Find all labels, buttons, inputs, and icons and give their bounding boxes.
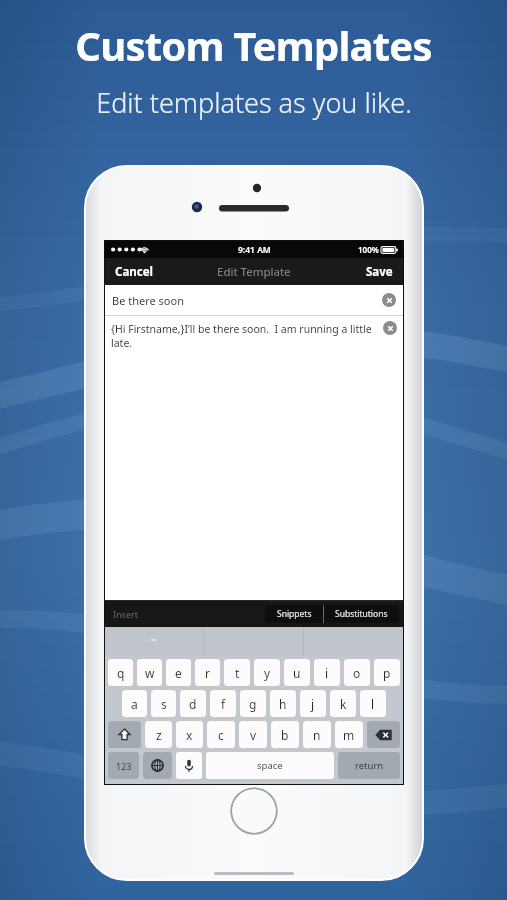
staticText: Custom Templates	[75, 18, 432, 72]
button[interactable]: p	[374, 659, 400, 686]
button[interactable]: space	[206, 752, 334, 779]
button[interactable]: Snippets	[265, 605, 323, 623]
button[interactable]: t	[224, 659, 250, 686]
staticText: {Hi Firstname,}I’ll be there soon. I am …	[111, 322, 381, 350]
button[interactable]: Shift	[108, 721, 141, 748]
button[interactable]: Save	[366, 258, 393, 285]
button[interactable]: Clear text	[382, 293, 396, 307]
staticText: Edit Template	[217, 264, 291, 280]
staticText: ""	[151, 637, 157, 647]
staticText: Be there soon	[112, 293, 184, 308]
staticText: g	[249, 696, 257, 712]
button[interactable]: Substitutions	[324, 605, 399, 623]
staticText: Save	[366, 264, 393, 280]
button[interactable]: w	[137, 659, 162, 686]
staticText: u	[293, 665, 301, 681]
button[interactable]: j	[300, 690, 326, 717]
staticText: i	[325, 665, 329, 681]
button[interactable]: g	[240, 690, 266, 717]
staticText: return	[355, 759, 384, 772]
button[interactable]: Cancel	[115, 258, 153, 285]
staticText: 100%	[358, 244, 379, 255]
button[interactable]: o	[344, 659, 370, 686]
button[interactable]: a	[122, 690, 147, 717]
staticText: k	[340, 696, 347, 712]
button[interactable]: h	[270, 690, 296, 717]
button[interactable]: Backspace	[367, 721, 400, 748]
button[interactable]: 123	[108, 752, 139, 779]
staticText: z	[156, 727, 162, 743]
button[interactable]: return	[338, 752, 400, 779]
staticText: 9:41 AM	[238, 244, 271, 256]
staticText: Edit templates as you like.	[96, 84, 412, 121]
button[interactable]: i	[314, 659, 340, 686]
staticText: h	[279, 696, 287, 712]
staticText: s	[161, 696, 167, 712]
button[interactable]: l	[360, 690, 386, 717]
button[interactable]: y	[254, 659, 280, 686]
button[interactable]: Switch keyboard	[143, 752, 172, 779]
staticText: w	[145, 665, 155, 681]
button[interactable]: z	[145, 721, 172, 748]
staticText: Cancel	[115, 264, 153, 280]
button[interactable]: f	[210, 690, 236, 717]
staticText: f	[221, 696, 226, 712]
staticText: v	[250, 727, 257, 743]
staticText: y	[264, 665, 271, 681]
staticText: space	[257, 759, 283, 772]
button[interactable]: b	[271, 721, 299, 748]
staticText: Substitutions	[335, 608, 388, 620]
button[interactable]: Be there soon	[105, 285, 403, 315]
staticText: l	[371, 696, 375, 712]
staticText: d	[189, 696, 197, 712]
staticText: m	[343, 727, 355, 743]
button[interactable]: s	[151, 690, 176, 717]
button[interactable]: c	[207, 721, 235, 748]
button[interactable]: d	[180, 690, 206, 717]
button[interactable]: e	[166, 659, 191, 686]
staticText: c	[218, 727, 224, 743]
button[interactable]: u	[284, 659, 310, 686]
button[interactable]: Clear text	[383, 321, 397, 335]
staticText: r	[205, 665, 210, 681]
button[interactable]: r	[195, 659, 220, 686]
button[interactable]: n	[303, 721, 331, 748]
staticText: a	[131, 696, 138, 712]
button[interactable]: v	[239, 721, 267, 748]
button[interactable]: {Hi Firstname,}I’ll be there soon. I am …	[105, 316, 403, 600]
staticText: e	[175, 665, 182, 681]
staticText: 123	[116, 760, 132, 772]
staticText: p	[383, 665, 391, 681]
button[interactable]: x	[176, 721, 203, 748]
staticText: o	[353, 665, 361, 681]
button[interactable]: Dictate	[176, 752, 202, 779]
button[interactable]: m	[335, 721, 363, 748]
staticText: Snippets	[277, 608, 312, 620]
staticText: x	[186, 727, 193, 743]
staticText: n	[313, 727, 321, 743]
staticText: t	[235, 665, 240, 681]
button[interactable]: q	[108, 659, 133, 686]
staticText: Insert	[113, 608, 138, 620]
staticText: b	[281, 727, 289, 743]
staticText: q	[117, 665, 125, 681]
staticText: j	[311, 696, 315, 712]
button[interactable]: k	[330, 690, 356, 717]
